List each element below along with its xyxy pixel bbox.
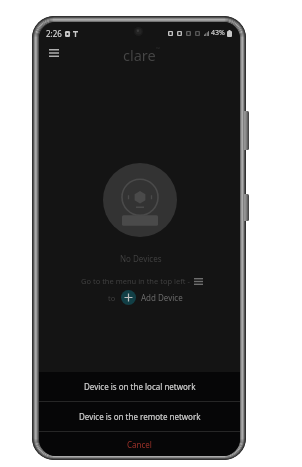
button[interactable]: Cancel: [39, 432, 240, 456]
staticText: Device is on the remote network: [79, 411, 201, 422]
button[interactable]: Menu: [43, 42, 65, 64]
staticText: 2:26: [46, 28, 62, 39]
button[interactable]: Device is on the local network: [39, 372, 240, 401]
staticText: to: [108, 293, 116, 303]
staticText: Cancel: [127, 439, 152, 450]
staticText: clare: [123, 45, 156, 65]
button[interactable]: Device is on the remote network: [39, 402, 240, 431]
staticText: No Devices: [120, 253, 162, 264]
staticText: ™: [156, 46, 160, 53]
staticText: Go to the menu in the top left -: [81, 276, 190, 286]
staticText: 43%: [211, 28, 225, 38]
staticText: Add Device: [141, 292, 183, 303]
staticText: Device is on the local network: [84, 381, 196, 392]
